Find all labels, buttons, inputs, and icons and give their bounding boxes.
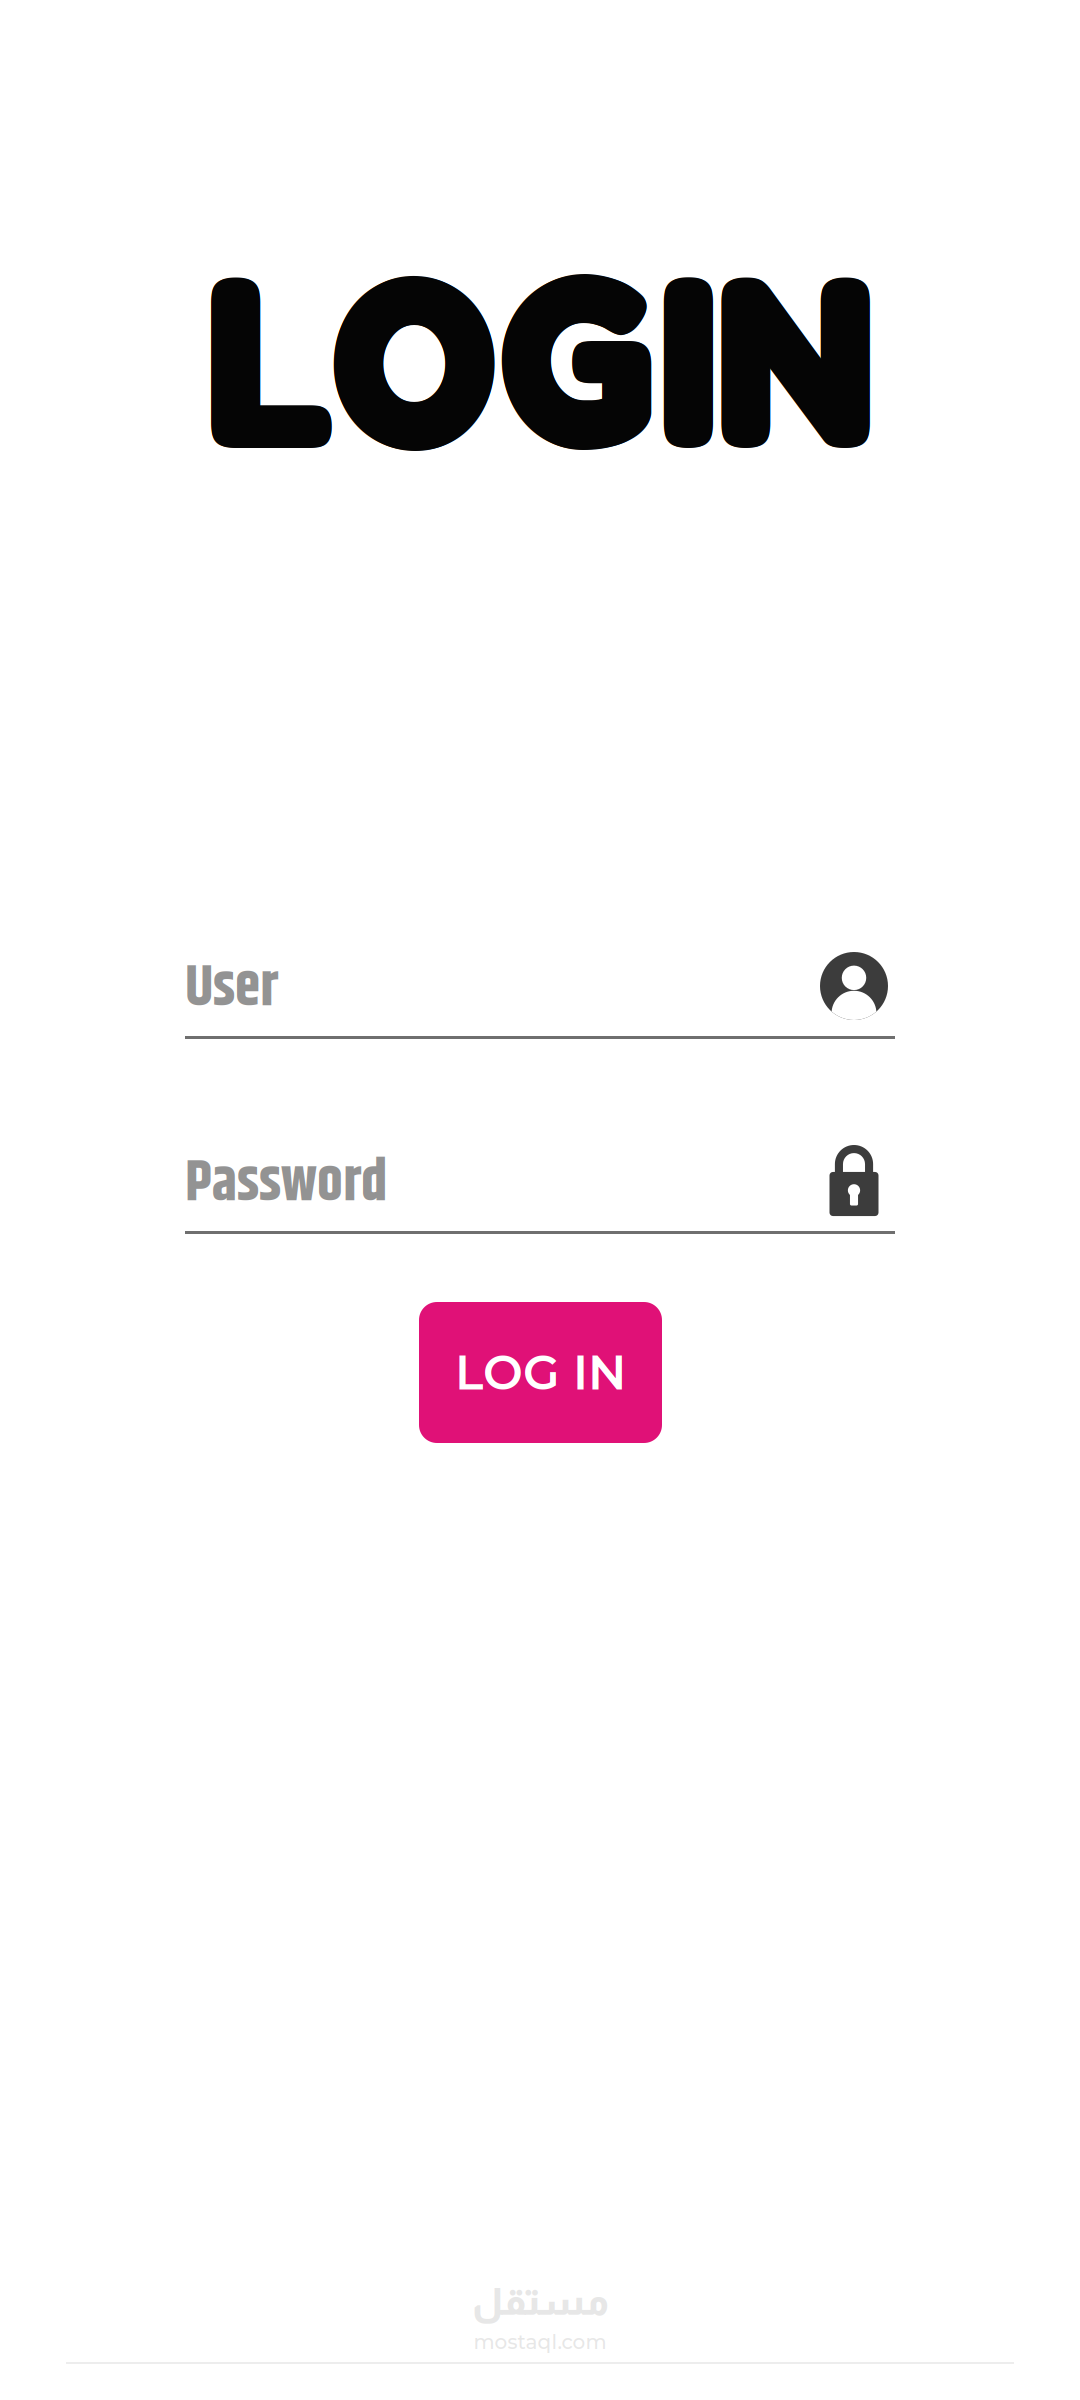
staticText: LOGIN [199, 213, 870, 499]
staticText: LOG IN [455, 1344, 626, 1401]
staticText: LOGIN [202, 216, 873, 502]
staticText: LOGIN [205, 211, 876, 497]
staticText: LOGIN [202, 210, 873, 496]
staticText: LOGIN [200, 215, 871, 501]
staticText: User [185, 945, 278, 1033]
button[interactable]: LOG IN [419, 1302, 662, 1443]
staticText: LOGIN [200, 211, 871, 497]
staticText: LOGIN [205, 213, 876, 499]
staticText: LOGIN [202, 213, 873, 499]
staticText: mostaql.com [473, 2330, 606, 2354]
button[interactable]: User [185, 919, 895, 1039]
staticText: Password [185, 1140, 387, 1228]
button[interactable]: Password [185, 1114, 895, 1234]
staticText: مستقل [471, 2281, 608, 2323]
staticText: LOGIN [205, 215, 876, 501]
